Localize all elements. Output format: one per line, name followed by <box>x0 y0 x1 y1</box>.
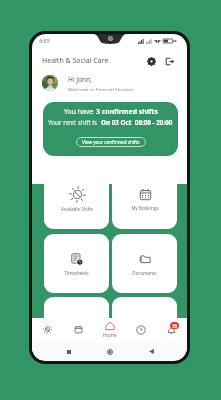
staticText: Welcome to Emerald Nursing <box>68 87 134 91</box>
staticText: Support <box>136 333 153 339</box>
button[interactable]: Recent apps <box>63 346 74 357</box>
staticText: 3 confirmed shifts <box>96 107 158 116</box>
button[interactable]: You have <box>43 102 178 156</box>
staticText: Timesheets <box>64 270 89 276</box>
button[interactable]: My Bookings <box>112 170 177 229</box>
button[interactable]: Expenses <box>44 297 109 356</box>
button[interactable]: Notifications <box>156 318 187 341</box>
staticText: Hi John, <box>68 75 93 84</box>
button[interactable]: Timesheets <box>44 234 109 293</box>
button[interactable]: Support <box>112 297 177 356</box>
button[interactable]: Back <box>146 346 157 357</box>
button[interactable]: Log out <box>163 55 176 68</box>
button[interactable]: History <box>125 318 156 341</box>
staticText: You have <box>64 107 96 116</box>
button[interactable]: Settings <box>145 55 158 68</box>
button[interactable]: Home <box>94 318 125 341</box>
staticText: My Bookings <box>131 205 159 211</box>
button[interactable]: Bookings <box>63 318 94 341</box>
staticText: Available Shifts <box>61 206 93 212</box>
staticText: Home <box>103 332 117 339</box>
staticText: Your next shift is <box>48 118 101 127</box>
staticText: View your confirmed shifts <box>82 139 140 145</box>
button[interactable]: Available Shifts <box>44 170 109 229</box>
staticText: Health & Social Care <box>42 56 109 66</box>
staticText: 36 <box>172 323 178 329</box>
staticText: 4:55 <box>39 37 50 44</box>
staticText: Documents <box>132 270 157 276</box>
button[interactable]: Documents <box>112 234 177 293</box>
button[interactable]: Home <box>104 346 115 357</box>
button[interactable]: View your confirmed shifts <box>76 137 146 147</box>
staticText: Expenses <box>67 333 87 339</box>
button[interactable]: Available shifts <box>32 318 63 341</box>
staticText: On 03 Oct 08:00 - 20:00 <box>101 118 173 127</box>
